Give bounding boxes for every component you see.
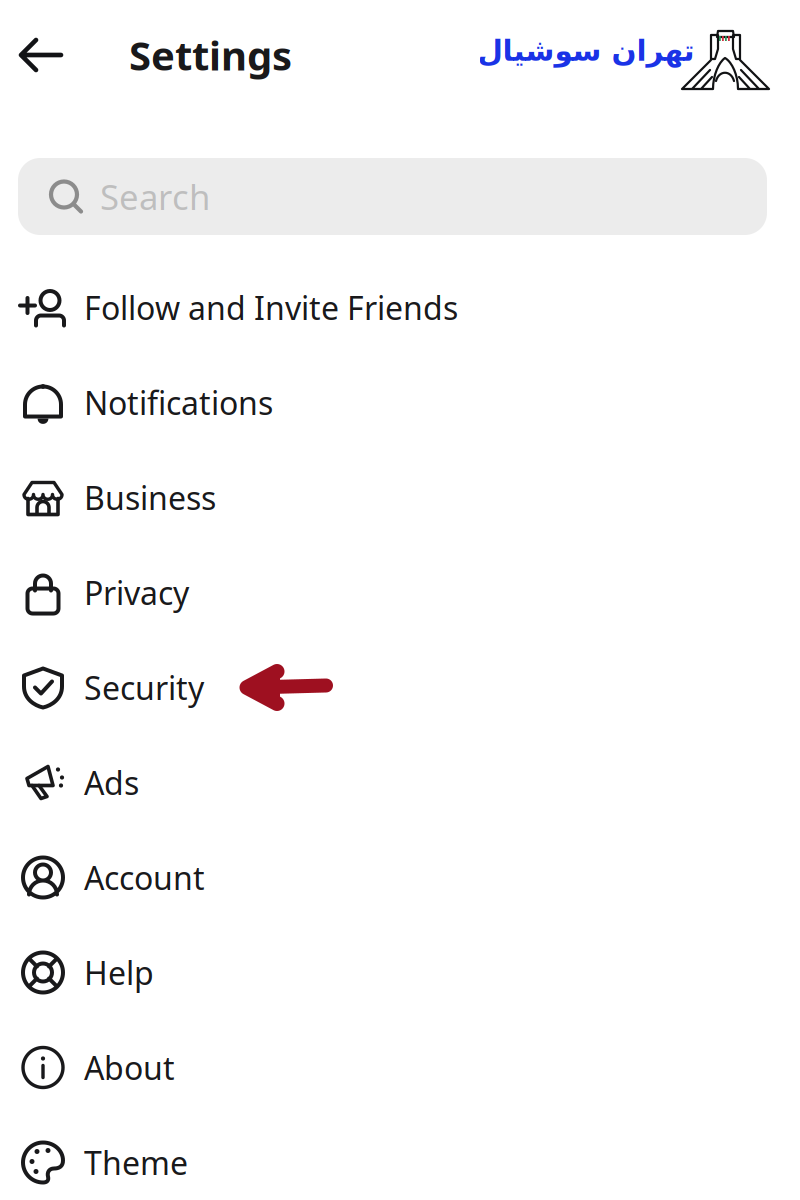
staticText: Notifications <box>84 381 273 424</box>
staticText: Theme <box>84 1141 188 1184</box>
staticText: Settings <box>129 28 292 81</box>
staticText: Ads <box>84 761 139 804</box>
staticText: Security <box>84 666 204 709</box>
button[interactable]: Back <box>0 0 64 110</box>
button[interactable]: Security <box>0 640 800 735</box>
button[interactable]: Privacy <box>0 545 800 640</box>
button[interactable]: Help <box>0 925 800 1020</box>
staticText: تهران سوشیال <box>477 34 694 67</box>
button[interactable]: Notifications <box>0 355 800 450</box>
button[interactable]: Business <box>0 450 800 545</box>
button[interactable]: Ads <box>0 735 800 830</box>
staticText: Follow and Invite Friends <box>84 286 458 329</box>
button[interactable]: Account <box>0 830 800 925</box>
staticText: Account <box>84 856 205 899</box>
button[interactable]: Follow and Invite Friends <box>0 260 800 355</box>
staticText: Help <box>84 951 154 994</box>
staticText: About <box>84 1046 175 1089</box>
staticText: Privacy <box>84 571 189 614</box>
staticText: Business <box>84 476 216 519</box>
button[interactable]: About <box>0 1020 800 1115</box>
button[interactable]: Theme <box>0 1115 800 1200</box>
staticText: Search <box>100 173 210 219</box>
